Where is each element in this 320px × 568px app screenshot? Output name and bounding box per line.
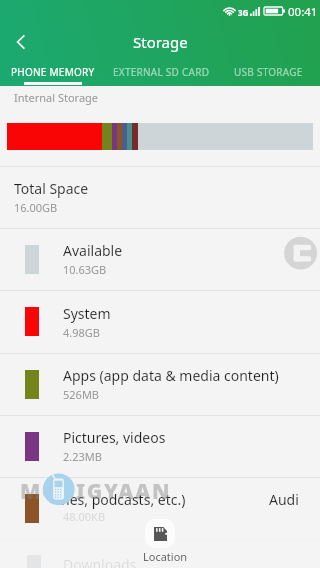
button[interactable]: Location xyxy=(145,519,175,548)
staticText: USB STORAGE xyxy=(234,65,303,79)
button[interactable]: EXTERNAL SD CARD xyxy=(105,64,217,86)
staticText: 526MB xyxy=(63,387,100,402)
staticText: nes, podcasts, etc.) xyxy=(61,490,186,509)
staticText: Available xyxy=(63,241,123,260)
button[interactable]: System xyxy=(0,290,320,353)
staticText: 10.63GB xyxy=(63,262,107,277)
staticText: Internal Storage xyxy=(14,90,99,105)
button[interactable]: USB STORAGE xyxy=(217,64,320,86)
staticText: 2.23MB xyxy=(63,449,102,464)
staticText: Apps (app data & media content) xyxy=(63,366,279,385)
button[interactable]: Pictures, videos xyxy=(0,415,320,477)
staticText: 00:41 xyxy=(288,4,318,20)
staticText: 4.98GB xyxy=(63,325,100,340)
staticText: Audi xyxy=(269,490,299,509)
staticText: Storage xyxy=(133,32,188,52)
button[interactable]: PHONE MEMORY xyxy=(0,64,105,86)
staticText: MOBIGYAAN xyxy=(20,477,172,506)
staticText: 16.00GB xyxy=(14,200,58,215)
button[interactable]: nes, podcasts, etc.) xyxy=(0,477,320,539)
button[interactable]: Back xyxy=(0,21,42,63)
staticText: Downloads xyxy=(63,555,137,568)
button[interactable]: Available xyxy=(0,228,320,290)
staticText: EXTERNAL SD CARD xyxy=(113,65,210,79)
staticText: Total Space xyxy=(14,179,89,198)
staticText: 48.00KB xyxy=(63,509,106,524)
button[interactable]: Apps (app data & media content) xyxy=(0,353,320,415)
staticText: System xyxy=(63,304,111,323)
staticText: Location xyxy=(143,549,188,564)
staticText: 3G xyxy=(238,7,249,18)
button[interactable]: Downloads xyxy=(0,539,320,568)
staticText: PHONE MEMORY xyxy=(11,65,95,79)
button[interactable]: Total Space xyxy=(0,166,320,228)
staticText: Pictures, videos xyxy=(63,428,166,447)
